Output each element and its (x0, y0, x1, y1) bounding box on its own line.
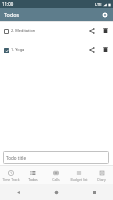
staticText: Calls (52, 177, 60, 182)
button[interactable]: Share (85, 43, 99, 57)
button[interactable]: Delete (99, 24, 112, 37)
button[interactable]: Home (37, 184, 75, 200)
staticText: Todos (4, 11, 20, 18)
staticText: Diary (97, 177, 106, 182)
staticText: Todo title (6, 155, 27, 161)
staticText: 2. Meditation (11, 28, 36, 33)
button[interactable]: Back (0, 184, 37, 200)
button[interactable]: Budget list (67, 166, 90, 184)
button[interactable]: Time Track (0, 166, 22, 184)
button[interactable]: Settings (99, 9, 111, 21)
button[interactable]: 1. Yoga (0, 40, 113, 59)
button[interactable]: Todos (22, 166, 44, 184)
button[interactable]: Todo title (3, 151, 109, 164)
staticText: LTE (95, 2, 102, 7)
staticText: Todos (28, 177, 38, 182)
staticText: 1. Yoga (11, 47, 25, 52)
staticText: 11:00 (2, 1, 14, 7)
staticText: Time Track (2, 177, 20, 182)
button[interactable]: Diary (90, 166, 113, 184)
button[interactable]: Delete (99, 43, 112, 56)
button[interactable]: Share (85, 24, 99, 38)
button[interactable]: 2. Meditation (0, 21, 113, 40)
staticText: Budget list (70, 177, 88, 182)
button[interactable]: Recents (75, 184, 113, 200)
button[interactable]: Calls (44, 166, 67, 184)
